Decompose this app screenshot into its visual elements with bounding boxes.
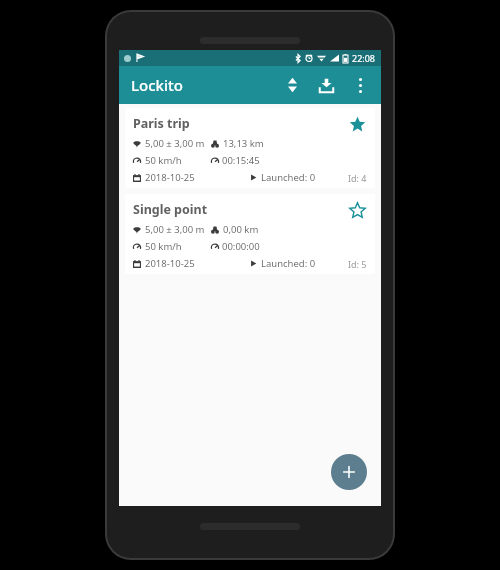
button[interactable]: Remove favorite	[345, 112, 369, 136]
staticText: Paris trip	[133, 115, 190, 132]
button[interactable]: More options	[343, 68, 377, 102]
button[interactable]: Add itinerary	[331, 454, 367, 490]
staticText: 5,00 ± 3,00 m	[145, 137, 205, 150]
button[interactable]: Single point	[125, 194, 375, 274]
staticText: 2018-10-25	[145, 257, 195, 270]
button[interactable]: Paris trip	[125, 108, 375, 188]
button[interactable]: Add favorite	[345, 198, 369, 222]
staticText: 0,00 km	[223, 223, 259, 236]
staticText: Launched: 0	[261, 257, 316, 270]
staticText: 22:08	[352, 52, 376, 64]
staticText: 13,13 km	[223, 137, 264, 150]
staticText: 5,00 ± 3,00 m	[145, 223, 205, 236]
button[interactable]: Sort	[275, 68, 309, 102]
staticText: 00:15:45	[222, 154, 260, 167]
staticText: Single point	[133, 201, 208, 218]
staticText: 2018-10-25	[145, 171, 195, 184]
staticText: 00:00:00	[222, 240, 260, 253]
button[interactable]: Import	[309, 68, 343, 102]
staticText: Id: 5	[348, 258, 367, 270]
staticText: 50 km/h	[145, 240, 182, 253]
staticText: Launched: 0	[261, 171, 316, 184]
staticText: Id: 4	[348, 172, 367, 184]
staticText: 50 km/h	[145, 154, 182, 167]
staticText: Lockito	[131, 75, 183, 95]
